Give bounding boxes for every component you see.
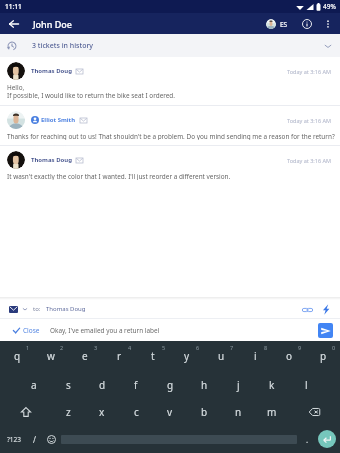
staticText: Thomas Doug [31,67,72,75]
staticText: Today at 3:16 AM [287,68,332,75]
staticText: 11:11 [5,2,22,11]
button[interactable]: g [153,371,187,399]
button[interactable]: u [204,341,238,371]
button[interactable]: Quick replies [319,303,332,316]
button[interactable]: d [85,371,119,399]
staticText: g [167,378,174,392]
staticText: q [14,349,21,363]
staticText: 6 [196,344,200,351]
button[interactable]: i [238,341,272,371]
staticText: 5 [162,344,166,351]
staticText: h [201,378,208,392]
button[interactable]: Thomas Doug [0,146,340,185]
staticText: Thomas Doug [31,156,72,164]
button[interactable]: Backspace [289,399,340,425]
staticText: 0 [332,344,336,351]
button[interactable]: k [255,371,289,399]
staticText: z [66,405,71,419]
button[interactable]: c [119,399,153,425]
staticText: 3 [94,344,98,351]
button[interactable]: Assigned to ES [264,19,290,29]
staticText: 2 [60,344,64,351]
staticText: n [235,405,242,419]
button[interactable]: Enter [318,430,336,448]
button[interactable]: Thomas Doug [0,57,340,105]
staticText: . [306,434,309,445]
button[interactable]: w [34,341,68,371]
staticText: v [167,405,173,419]
button[interactable]: n [221,399,255,425]
button[interactable]: 3 tickets in history [0,34,340,57]
staticText: Hello, [7,83,25,91]
button[interactable]: r [102,341,136,371]
staticText: Thanks for reaching out to us! That shou… [7,132,335,140]
button[interactable]: t [136,341,170,371]
button[interactable]: Shift [0,399,51,425]
staticText: It wasn't exactly the color that I wante… [7,172,231,180]
staticText: to: [33,305,41,313]
staticText: u [218,349,225,363]
button[interactable]: Space [61,425,297,453]
staticText: f [134,378,138,392]
staticText: ?123 [7,435,21,444]
staticText: 4 [128,344,132,351]
button[interactable]: / [27,425,41,453]
staticText: John Doe [33,18,72,30]
staticText: 7 [230,344,234,351]
button[interactable]: z [51,399,85,425]
staticText: b [201,405,208,419]
button[interactable]: Info [298,15,316,33]
staticText: k [269,378,275,392]
staticText: 9 [298,344,302,351]
staticText: / [33,434,36,445]
button[interactable]: ?123 [0,425,27,453]
staticText: 3 tickets in history [32,41,94,51]
button[interactable]: h [187,371,221,399]
staticText: a [31,378,37,392]
staticText: i [254,349,257,363]
button[interactable]: Elliot Smith [0,106,340,145]
staticText: x [99,405,105,419]
button[interactable]: Back [0,13,27,34]
button[interactable]: Emoji [41,425,61,453]
button[interactable]: j [221,371,255,399]
button[interactable]: a [17,371,51,399]
button[interactable]: l [289,371,323,399]
staticText: e [82,349,88,363]
button[interactable]: Send [318,323,333,338]
staticText: Thomas Doug [46,305,86,313]
button[interactable]: Email channel [7,303,19,315]
staticText: 49% [323,2,336,11]
staticText: 8 [264,344,268,351]
staticText: s [66,378,71,392]
staticText: Okay, I've emailed you a return label [50,326,160,335]
staticText: Today at 3:16 AM [287,157,332,164]
button[interactable]: Attach file [301,303,314,316]
button[interactable]: p [306,341,340,371]
button[interactable]: m [255,399,289,425]
button[interactable]: s [51,371,85,399]
button[interactable]: f [119,371,153,399]
button[interactable]: y [170,341,204,371]
button[interactable]: b [187,399,221,425]
button[interactable]: q [0,341,34,371]
staticText: w [47,349,55,363]
staticText: p [320,349,327,363]
staticText: c [134,405,139,419]
button[interactable]: e [68,341,102,371]
button[interactable]: More options [319,15,337,33]
button[interactable]: v [153,399,187,425]
staticText: d [99,378,106,392]
staticText: Today at 3:16 AM [287,117,332,124]
button[interactable]: x [85,399,119,425]
staticText: Elliot Smith [41,116,76,124]
staticText: ES [280,20,288,29]
staticText: m [267,405,277,419]
staticText: r [117,349,122,363]
button[interactable]: o [272,341,306,371]
staticText: l [305,378,308,392]
staticText: j [237,378,240,392]
button[interactable]: Close [13,324,40,337]
staticText: 1 [26,344,30,351]
button[interactable]: . [297,425,318,453]
